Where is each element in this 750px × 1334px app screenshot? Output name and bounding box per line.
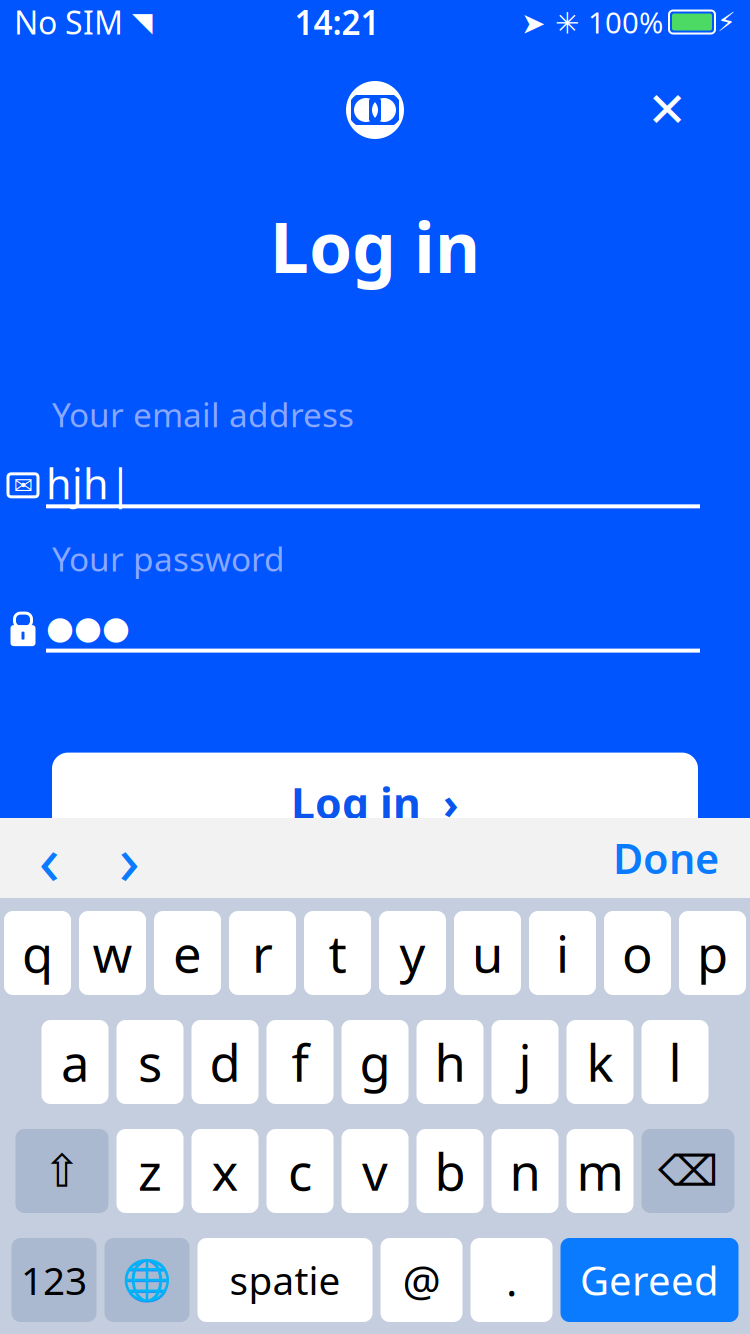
button[interactable]: r [229,911,296,995]
staticText: j [518,1028,531,1096]
staticText: s [138,1028,162,1096]
staticText: Gereed [580,1253,719,1306]
staticText: x [211,1137,238,1205]
button[interactable]: Close [636,79,698,141]
staticText: 14:21 [294,0,379,44]
button[interactable]: b [416,1129,483,1213]
button[interactable]: Next field [89,818,169,898]
staticText: ‹ [38,812,59,904]
button[interactable]: x [191,1129,258,1213]
staticText: w [92,919,132,987]
button[interactable]: p [679,911,746,995]
button[interactable]: spatie [197,1238,372,1322]
staticText: c [288,1137,312,1205]
staticText: 123 [21,1254,87,1306]
staticText: b [434,1137,465,1205]
button[interactable]: q [4,911,71,995]
staticText: u [472,919,503,987]
button[interactable]: c [266,1129,333,1213]
staticText: e [173,919,202,987]
staticText: t [328,919,346,987]
staticText: ⚡︎ [717,7,736,37]
staticText: y [399,919,425,987]
staticText: ⇧ [43,1145,81,1197]
staticText: k [586,1028,613,1096]
staticText: m [576,1137,623,1205]
button[interactable]: ⇧ [15,1129,108,1213]
button[interactable]: y [379,911,446,995]
staticText: p [697,919,728,987]
staticText: . [506,1252,517,1308]
staticText: Your email address [52,392,354,436]
staticText: ◥ [123,7,153,37]
button[interactable]: i [529,911,596,995]
staticText: Log in › [291,774,459,831]
button[interactable]: z [116,1129,183,1213]
staticText: ⌫ [658,1147,718,1195]
button[interactable]: @ [380,1238,462,1322]
button[interactable]: l [641,1020,708,1104]
staticText: o [622,919,653,987]
button[interactable]: s [116,1020,183,1104]
staticText: 🌐 [122,1257,172,1303]
button[interactable]: k [566,1020,633,1104]
staticText: l [668,1028,681,1096]
button[interactable]: m [566,1129,633,1213]
button[interactable]: Gereed [560,1238,738,1322]
staticText: a [61,1028,89,1096]
staticText: @ [402,1252,440,1308]
button[interactable]: f [266,1020,333,1104]
button[interactable]: u [454,911,521,995]
staticText: d [209,1028,240,1096]
button[interactable]: o [604,911,671,995]
staticText: Log in [270,200,480,292]
button[interactable]: d [191,1020,258,1104]
button[interactable]: v [341,1129,408,1213]
button[interactable]: ⌫ [641,1129,734,1213]
staticText: i [556,919,569,987]
button[interactable]: t [304,911,371,995]
staticText: ➤ ✳ 100% [521,2,663,41]
button[interactable]: Log in › [52,753,698,853]
staticText: q [22,919,53,987]
staticText: n [509,1137,540,1205]
button[interactable]: j [491,1020,558,1104]
staticText: Done [613,831,719,885]
staticText: v [362,1137,388,1205]
button[interactable]: e [154,911,221,995]
staticText: g [359,1028,390,1096]
staticText: z [138,1137,162,1205]
button[interactable]: . [470,1238,552,1322]
button[interactable]: Previous field [9,818,89,898]
staticText: No SIM [14,1,123,43]
button[interactable]: n [491,1129,558,1213]
staticText: spatie [229,1254,340,1306]
staticText: hjh| [46,456,132,511]
staticText: › [118,812,139,904]
staticText: ✕ [647,83,687,137]
button[interactable]: w [79,911,146,995]
button[interactable]: g [341,1020,408,1104]
staticText: r [252,919,273,987]
button[interactable]: 123 [11,1238,96,1322]
staticText: f [291,1028,308,1096]
button[interactable]: h [416,1020,483,1104]
staticText: ✉ [13,472,32,498]
button[interactable]: Done [595,818,737,898]
staticText: ●●● [46,609,130,646]
staticText: h [434,1028,465,1096]
staticText: Your password [52,536,285,581]
button[interactable]: 🌐 [104,1238,189,1322]
button[interactable]: a [41,1020,108,1104]
